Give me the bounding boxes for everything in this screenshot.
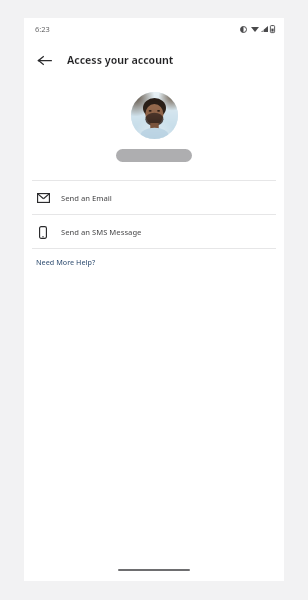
button[interactable]: Send an Email bbox=[24, 181, 284, 214]
button[interactable]: Need More Help? bbox=[24, 249, 284, 275]
staticText: 6:23 bbox=[35, 24, 50, 34]
button[interactable]: Profile photo bbox=[131, 92, 178, 139]
staticText: Access your account bbox=[67, 53, 174, 67]
button[interactable]: Send an SMS Message bbox=[24, 215, 284, 248]
staticText: Need More Help? bbox=[36, 257, 96, 267]
staticText: Send an SMS Message bbox=[61, 227, 142, 237]
button[interactable]: Back bbox=[29, 45, 59, 75]
staticText: Send an Email bbox=[61, 193, 112, 203]
